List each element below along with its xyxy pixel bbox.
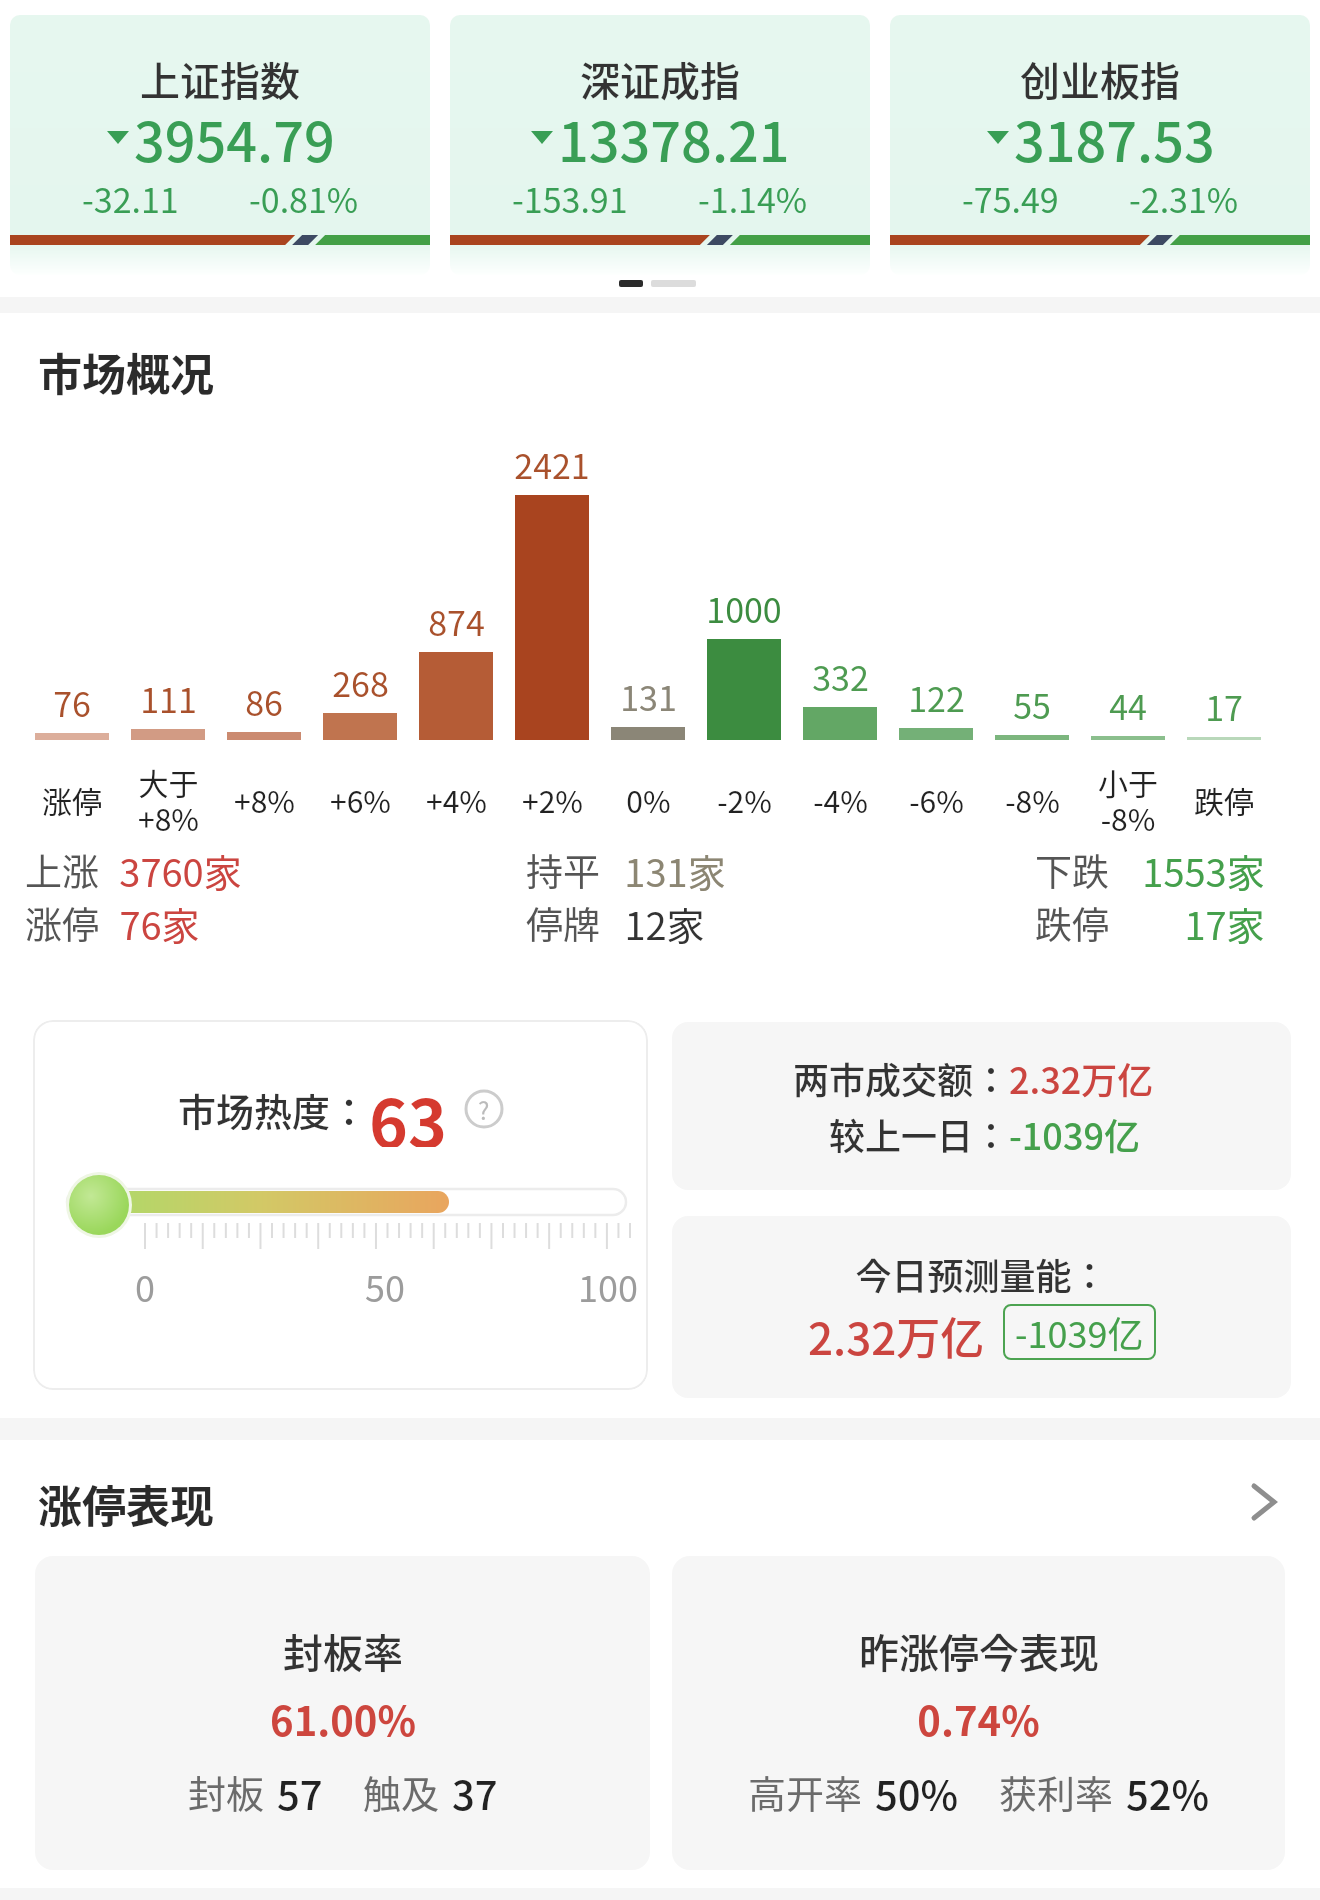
staticText: 61.00% bbox=[270, 1690, 416, 1748]
staticText: 55 bbox=[1013, 680, 1051, 724]
staticText: 17家 bbox=[1184, 896, 1265, 944]
staticText: +2% bbox=[522, 778, 583, 821]
staticText: 37 bbox=[452, 1764, 498, 1812]
button[interactable]: 深证成指 bbox=[450, 15, 870, 275]
staticText: 0 bbox=[135, 1260, 155, 1306]
staticText: 63 bbox=[369, 1071, 447, 1147]
staticText: 332 bbox=[812, 652, 869, 696]
staticText: 2.32万亿 bbox=[1009, 1052, 1194, 1100]
staticText: 封板率 bbox=[283, 1622, 403, 1680]
staticText: -1039亿 bbox=[1015, 1306, 1144, 1358]
staticText: 874 bbox=[428, 597, 485, 641]
staticText: 上涨 bbox=[25, 843, 99, 891]
staticText: 2.32万亿 bbox=[808, 1304, 985, 1360]
staticText: 小于 -8% bbox=[1098, 760, 1158, 839]
staticText: 下跌 bbox=[1035, 843, 1109, 891]
staticText: 13378.21 bbox=[558, 99, 790, 173]
staticText: 今日预测量能： bbox=[855, 1248, 1108, 1296]
staticText: -0.81% bbox=[249, 174, 359, 220]
staticText: 涨停 bbox=[42, 778, 102, 821]
staticText: 高开率 bbox=[748, 1764, 863, 1812]
staticText: 1000 bbox=[706, 584, 782, 628]
staticText: 50 bbox=[365, 1260, 405, 1306]
staticText: +8% bbox=[234, 778, 295, 821]
staticText: 两市成交额： bbox=[769, 1052, 1009, 1100]
staticText: 跌停 bbox=[1194, 778, 1254, 821]
staticText: 停牌 bbox=[526, 896, 600, 944]
button[interactable]: 创业板指 bbox=[890, 15, 1310, 275]
staticText: 100 bbox=[578, 1260, 638, 1306]
staticText: 17 bbox=[1205, 682, 1243, 726]
staticText: 50% bbox=[875, 1764, 959, 1812]
staticText: 市场热度： bbox=[178, 1082, 369, 1137]
staticText: 1553家 bbox=[1142, 843, 1265, 891]
button[interactable] bbox=[1248, 1482, 1280, 1522]
staticText: 52% bbox=[1126, 1764, 1210, 1812]
staticText: 涨停 bbox=[25, 896, 99, 944]
staticText: 12家 bbox=[624, 896, 705, 944]
staticText: 44 bbox=[1109, 681, 1147, 725]
staticText: -2.31% bbox=[1129, 174, 1239, 220]
staticText: -4% bbox=[813, 778, 868, 821]
staticText: 封板 bbox=[188, 1764, 265, 1812]
staticText: -75.49 bbox=[962, 174, 1059, 220]
staticText: 市场概况 bbox=[38, 340, 214, 396]
staticText: 大于 +8% bbox=[138, 760, 199, 839]
staticText: 持平 bbox=[526, 843, 600, 891]
staticText: ? bbox=[478, 1092, 490, 1127]
staticText: +6% bbox=[330, 778, 391, 821]
staticText: 触及 bbox=[363, 1764, 440, 1812]
staticText: -6% bbox=[909, 778, 964, 821]
staticText: -8% bbox=[1005, 778, 1060, 821]
button[interactable] bbox=[33, 1020, 648, 1390]
staticText: -1.14% bbox=[698, 174, 808, 220]
staticText: -1039亿 bbox=[1009, 1108, 1194, 1156]
staticText: 涨停表现 bbox=[38, 1472, 214, 1528]
staticText: 86 bbox=[245, 677, 283, 721]
staticText: 深证成指 bbox=[580, 50, 740, 106]
staticText: 跌停 bbox=[1035, 896, 1109, 944]
staticText: 2421 bbox=[514, 440, 590, 484]
button[interactable] bbox=[35, 1556, 650, 1870]
staticText: 268 bbox=[332, 658, 389, 702]
staticText: 122 bbox=[908, 673, 965, 717]
staticText: 57 bbox=[277, 1764, 323, 1812]
staticText: 上证指数 bbox=[140, 50, 300, 106]
staticText: 76 bbox=[53, 678, 91, 722]
staticText: 0% bbox=[626, 778, 671, 821]
staticText: 0.74% bbox=[917, 1690, 1040, 1748]
staticText: -32.11 bbox=[82, 174, 179, 220]
staticText: 131家 bbox=[624, 843, 726, 891]
staticText: -2% bbox=[717, 778, 772, 821]
staticText: 131 bbox=[620, 672, 677, 716]
staticText: 昨涨停今表现 bbox=[859, 1622, 1099, 1680]
button[interactable] bbox=[672, 1556, 1285, 1870]
button[interactable] bbox=[672, 1022, 1291, 1190]
staticText: 111 bbox=[140, 674, 197, 718]
staticText: 3760家 bbox=[119, 843, 242, 891]
staticText: +4% bbox=[426, 778, 487, 821]
staticText: 较上一日： bbox=[769, 1108, 1009, 1156]
staticText: -153.91 bbox=[512, 174, 628, 220]
button[interactable]: 上证指数 bbox=[10, 15, 430, 275]
staticText: 3954.79 bbox=[134, 99, 335, 173]
staticText: 76家 bbox=[119, 896, 200, 944]
staticText: 创业板指 bbox=[1020, 50, 1180, 106]
staticText: 获利率 bbox=[999, 1764, 1114, 1812]
staticText: 3187.53 bbox=[1014, 99, 1215, 173]
button[interactable] bbox=[672, 1216, 1291, 1398]
